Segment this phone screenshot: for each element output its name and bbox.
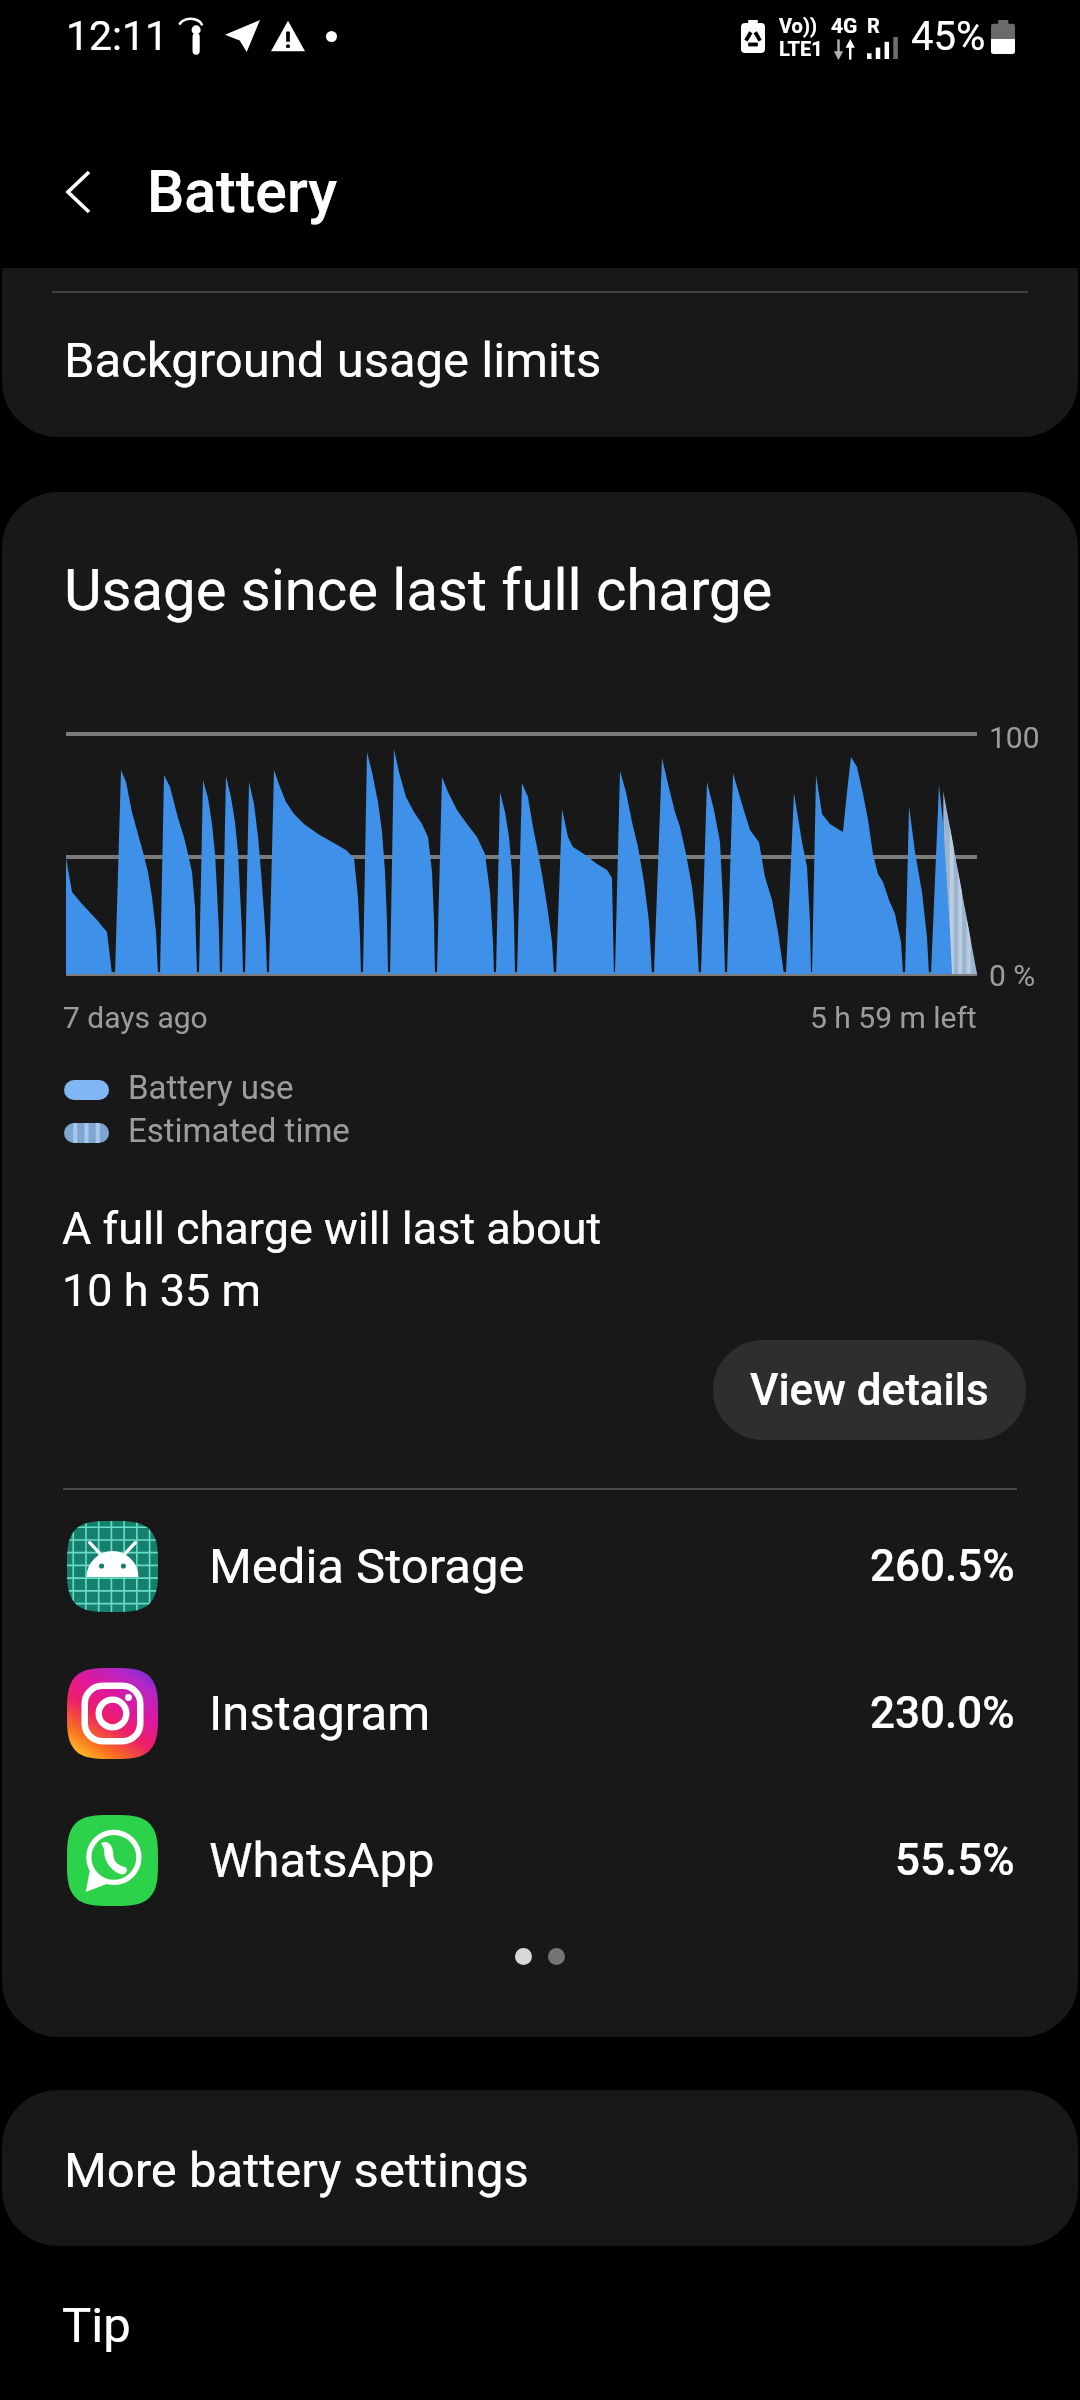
staticText: 0 %: [989, 958, 1036, 993]
button[interactable]: Back: [40, 152, 120, 232]
button[interactable]: Background usage limits: [2, 268, 1078, 437]
staticText: R: [867, 14, 880, 37]
staticText: LTE1: [779, 37, 823, 60]
staticText: 4G: [831, 14, 858, 39]
staticText: 100: [989, 720, 1040, 755]
staticText: Estimated time: [128, 1111, 350, 1150]
staticText: Instagram: [209, 1685, 870, 1742]
staticText: Background usage limits: [64, 332, 602, 389]
staticText: WhatsApp: [209, 1832, 895, 1889]
button[interactable]: View details: [713, 1340, 1026, 1440]
staticText: A full charge will last about: [62, 1202, 602, 1255]
staticText: Usage since last full charge: [64, 556, 773, 624]
staticText: Battery use: [128, 1068, 294, 1107]
staticText: 5 h 59 m left: [810, 1000, 977, 1035]
staticText: Media Storage: [209, 1538, 870, 1595]
staticText: Vo)): [779, 14, 817, 37]
staticText: More battery settings: [64, 2142, 529, 2199]
staticText: 10 h 35 m: [62, 1264, 261, 1317]
button[interactable]: Media Storage: [2, 1506, 1078, 1626]
staticText: 260.5%: [870, 1540, 1015, 1592]
staticText: 45%: [911, 13, 986, 60]
button[interactable]: WhatsApp: [2, 1800, 1078, 1920]
button[interactable]: More battery settings: [2, 2090, 1078, 2246]
staticText: 12:11: [66, 12, 169, 60]
staticText: Battery: [147, 157, 338, 226]
staticText: View details: [750, 1364, 989, 1416]
button[interactable]: Instagram: [2, 1653, 1078, 1773]
staticText: Tip: [62, 2297, 131, 2354]
staticText: 55.5%: [895, 1834, 1015, 1886]
staticText: 7 days ago: [63, 1000, 208, 1035]
staticText: 230.0%: [870, 1687, 1015, 1739]
